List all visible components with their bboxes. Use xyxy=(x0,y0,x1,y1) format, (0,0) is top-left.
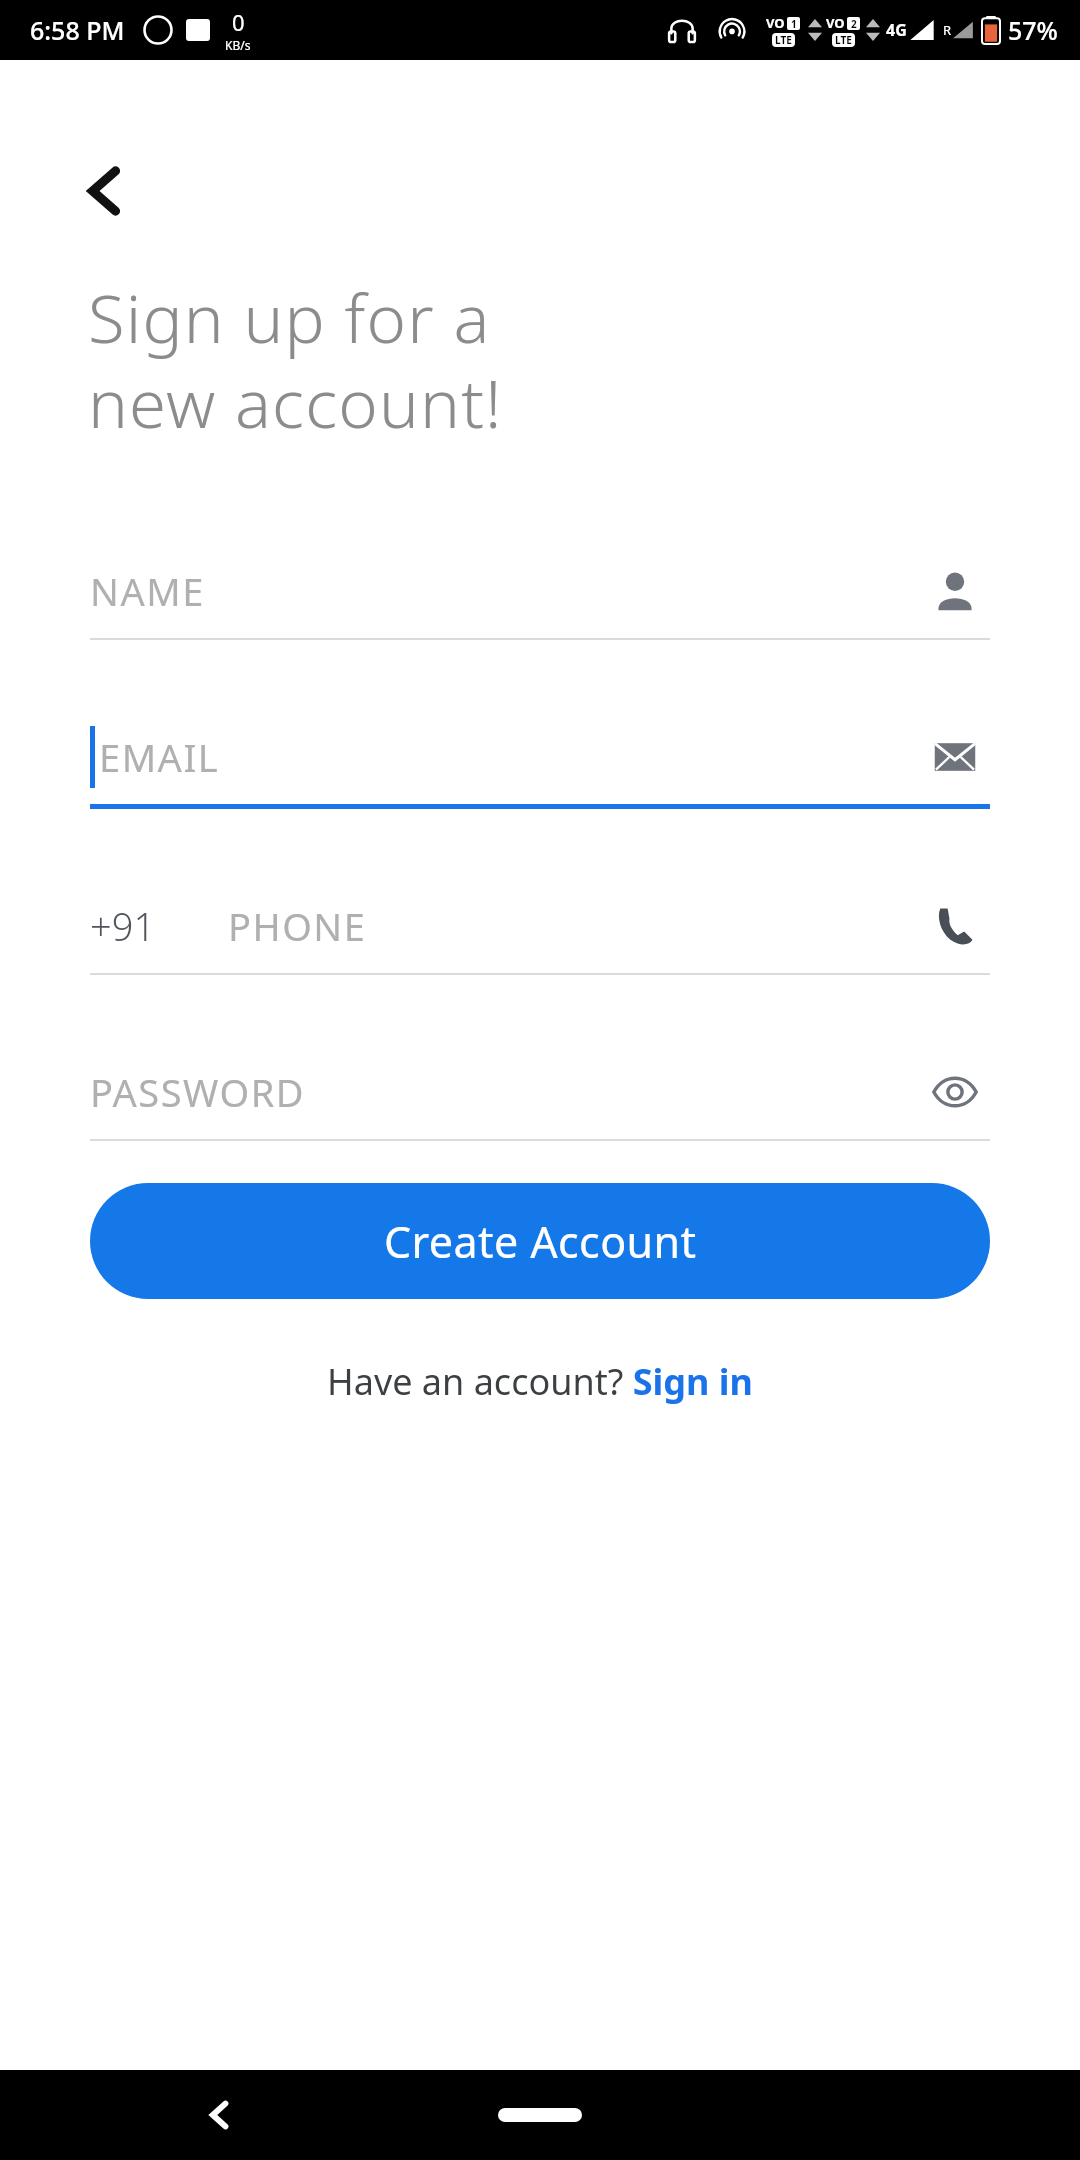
button[interactable]: Have an account? Sign in xyxy=(307,1347,773,1416)
button[interactable]: EMAIL xyxy=(920,722,990,792)
staticText: Have an account? Sign in xyxy=(327,1357,753,1406)
staticText: Sign up for a new account! xyxy=(88,271,503,448)
staticText: EMAIL xyxy=(99,731,920,783)
button[interactable]: +91 xyxy=(90,879,990,975)
button[interactable]: PASSWORD xyxy=(920,1057,990,1127)
button[interactable]: PASSWORD xyxy=(90,1045,990,1141)
button[interactable]: Back xyxy=(70,155,142,227)
staticText: KB/s xyxy=(225,37,251,53)
staticText: NAME xyxy=(90,565,920,617)
button[interactable]: NAME xyxy=(920,556,990,626)
staticText: VO xyxy=(766,14,785,32)
staticText: PHONE xyxy=(228,900,920,952)
staticText: 0 xyxy=(232,7,245,37)
staticText: VO xyxy=(826,14,845,32)
button[interactable]: Back xyxy=(185,2080,255,2150)
staticText: 1 xyxy=(791,17,797,30)
staticText: Create Account xyxy=(384,1212,697,1271)
staticText: 4G xyxy=(886,19,907,41)
button[interactable]: Create Account xyxy=(90,1183,990,1299)
button[interactable]: NAME xyxy=(90,544,990,640)
button[interactable]: Home xyxy=(485,2080,595,2150)
staticText: +91 xyxy=(90,900,156,952)
staticText: R xyxy=(943,21,952,39)
button[interactable]: PHONE xyxy=(920,891,990,961)
staticText: LTE xyxy=(775,33,792,47)
staticText: 2 xyxy=(851,17,857,30)
staticText: 57% xyxy=(1008,13,1058,47)
button[interactable]: EMAIL xyxy=(90,710,990,809)
staticText: LTE xyxy=(835,33,852,47)
staticText: 6:58 PM xyxy=(30,13,125,47)
staticText: PASSWORD xyxy=(90,1066,920,1118)
